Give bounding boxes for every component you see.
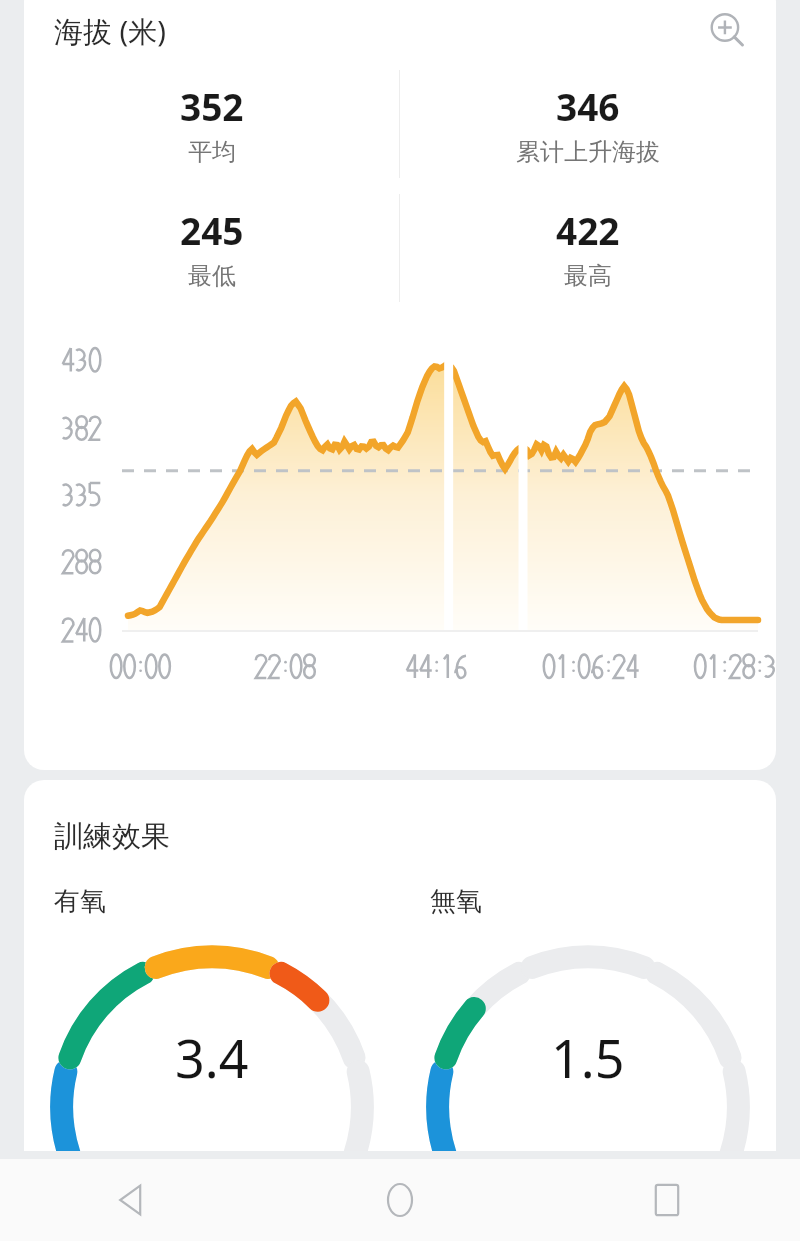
staticText: 有氧 [54, 885, 106, 918]
button[interactable]: 1.5 [400, 944, 776, 1144]
staticText: 1.5 [551, 1022, 625, 1093]
staticText: 352 [180, 81, 244, 131]
staticText: 平均 [188, 137, 236, 167]
button[interactable]: Zoom in [700, 3, 756, 59]
staticText: 3.4 [175, 1022, 249, 1093]
staticText: 422 [556, 205, 620, 255]
button[interactable]: Recents [533, 1159, 800, 1241]
staticText: 訓練效果 [54, 818, 170, 855]
staticText: 無氧 [430, 885, 482, 918]
button[interactable]: 3.4 [24, 944, 400, 1144]
staticText: 累计上升海拔 [516, 137, 660, 167]
staticText: 245 [180, 205, 244, 255]
button[interactable]: Home [266, 1159, 533, 1241]
staticText: 最高 [564, 261, 612, 291]
staticText: 346 [556, 81, 620, 131]
staticText: 最低 [188, 261, 236, 291]
staticText: 海拔 (米) [54, 11, 166, 51]
button[interactable]: Back [0, 1159, 266, 1241]
